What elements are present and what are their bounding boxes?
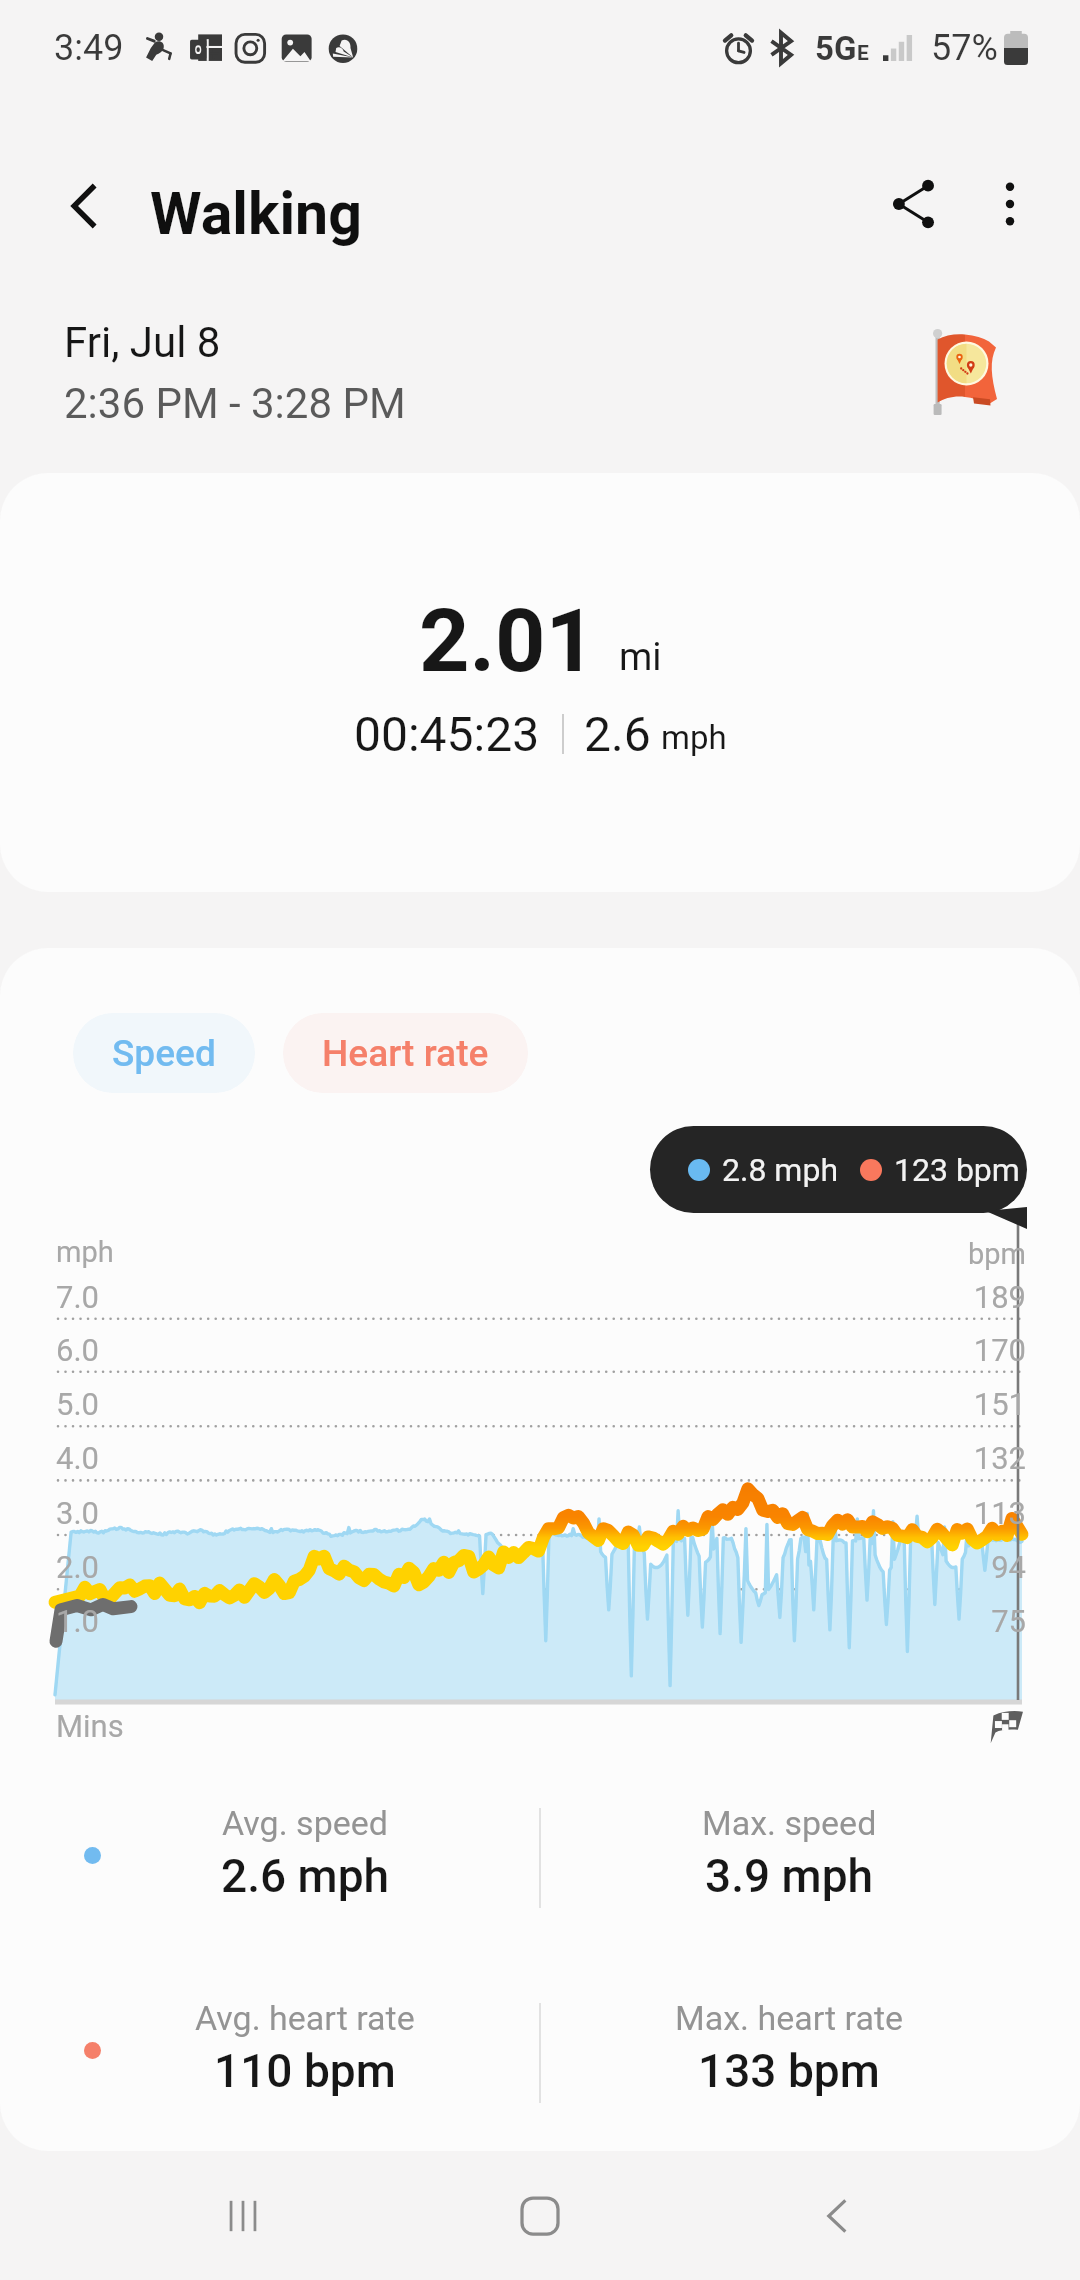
staticText: 57% <box>931 27 998 69</box>
staticText: 94 <box>940 1549 1026 1585</box>
staticText: 6.0 <box>56 1332 100 1368</box>
button[interactable]: Share <box>866 156 962 252</box>
staticText: Speed <box>112 1032 216 1075</box>
button[interactable]: Speed <box>73 1013 255 1093</box>
staticText: mph <box>661 718 727 757</box>
staticText: 170 <box>940 1332 1026 1368</box>
button[interactable]: 2.01 <box>0 473 1080 892</box>
staticText: 1.0 <box>56 1603 100 1639</box>
staticText: Max. speed <box>702 1803 877 1843</box>
button[interactable]: Heart rate <box>283 1013 528 1093</box>
staticText: 132 <box>940 1440 1026 1476</box>
staticText: 00:45:23 <box>354 706 540 762</box>
staticText: 110 bpm <box>214 2044 396 2098</box>
staticText: 123 bpm <box>894 1151 1020 1189</box>
staticText: Fri, Jul 8 <box>64 318 221 367</box>
button[interactable]: Back <box>40 160 132 252</box>
staticText: 133 bpm <box>698 2044 880 2098</box>
button[interactable]: Recents <box>188 2161 298 2271</box>
staticText: 4.0 <box>56 1440 100 1476</box>
staticText: 3:49 <box>54 27 124 69</box>
staticText: 3.0 <box>56 1495 100 1531</box>
staticText: 2.8 mph <box>722 1151 838 1189</box>
staticText: E <box>857 41 869 66</box>
staticText: mi <box>619 635 662 680</box>
staticText: Walking <box>150 179 362 248</box>
staticText: 5G <box>815 29 857 68</box>
staticText: mph <box>56 1235 114 1269</box>
staticText: 113 <box>940 1495 1026 1531</box>
staticText: Max. heart rate <box>675 1998 904 2038</box>
staticText: Mins <box>56 1708 124 1744</box>
button[interactable]: Walking <box>150 179 362 248</box>
staticText: 2:36 PM - 3:28 PM <box>64 379 406 428</box>
button[interactable]: Home <box>485 2161 595 2271</box>
staticText: bpm <box>940 1237 1026 1271</box>
staticText: 151 <box>940 1386 1026 1422</box>
staticText: 2.0 <box>56 1549 100 1585</box>
staticText: 2.6 mph <box>221 1849 390 1903</box>
staticText: 3.9 mph <box>705 1849 874 1903</box>
staticText: 189 <box>940 1279 1026 1315</box>
staticText: 5.0 <box>56 1386 100 1422</box>
staticText: 75 <box>940 1603 1026 1639</box>
staticText: 2.01 <box>419 589 597 692</box>
staticText: Avg. heart rate <box>195 1998 415 2038</box>
button[interactable]: Back <box>783 2161 893 2271</box>
staticText: 2.6 <box>584 706 651 762</box>
staticText: Avg. speed <box>222 1803 388 1843</box>
staticText: Heart rate <box>322 1032 489 1075</box>
staticText: 7.0 <box>56 1279 100 1315</box>
button[interactable]: More options <box>962 156 1058 252</box>
